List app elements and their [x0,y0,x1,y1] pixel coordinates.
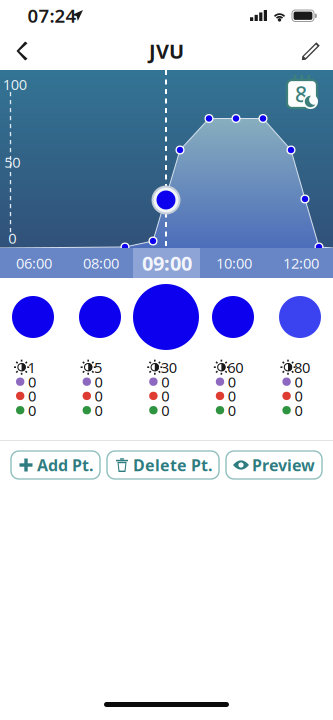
staticText: Add Pt. [37,454,93,476]
staticText: 80 [294,357,310,377]
staticText: 0 [28,400,36,420]
staticText: 08:00 [83,253,119,273]
staticText: 0 [161,400,169,420]
staticText: 0 [95,372,103,391]
staticText: 0 [294,400,302,420]
staticText: 100 [3,75,27,94]
staticText: 10:00 [216,253,252,273]
button[interactable]: Delete Pt. [107,451,219,479]
staticText: 0 [228,372,236,391]
staticText: 0 [161,386,169,406]
staticText: 0 [28,372,36,391]
button[interactable]: Edit [289,32,333,70]
button[interactable]: Add Pt. [11,451,100,479]
staticText: 50 [4,152,20,172]
staticText: 0 [228,400,236,420]
staticText: 5 [94,357,102,377]
staticText: 0 [8,228,16,248]
staticText: 0 [95,386,103,406]
staticText: 09:00 [142,250,192,276]
staticText: 06:00 [16,253,52,273]
staticText: 0 [228,386,236,406]
staticText: 8 [295,80,307,108]
button[interactable]: Preview [226,451,322,479]
staticText: Delete Pt. [133,454,212,476]
staticText: 0 [294,372,302,391]
staticText: 12:00 [283,253,319,273]
staticText: 0 [28,386,36,406]
staticText: 0 [95,400,103,420]
staticText: 60 [227,357,243,377]
staticText: 30 [161,357,177,377]
button[interactable]: Back [0,32,44,70]
staticText: 0 [161,372,169,391]
staticText: JVU [149,38,184,64]
staticText: Preview [252,454,315,476]
staticText: 1 [27,357,35,377]
staticText: 0 [294,386,302,406]
staticText: 07:24 [27,3,76,28]
